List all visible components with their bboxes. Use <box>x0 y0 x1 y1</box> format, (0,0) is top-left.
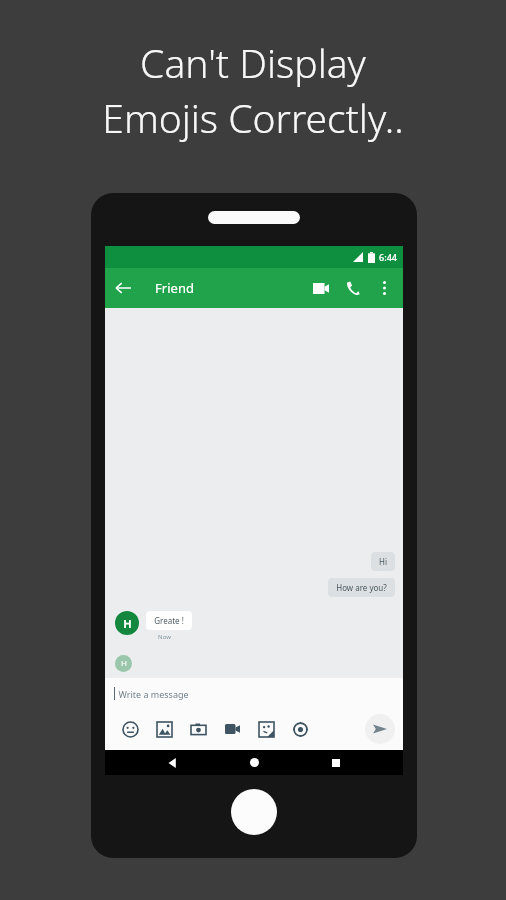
staticText: Now <box>158 633 171 641</box>
staticText: Friend <box>155 279 194 297</box>
button[interactable]: Video call <box>305 272 337 304</box>
staticText: 6:44 <box>379 251 397 263</box>
button[interactable]: Video <box>215 714 249 744</box>
button[interactable]: Home <box>239 750 269 775</box>
button[interactable]: Send <box>365 714 395 744</box>
staticText: Can't Display <box>140 36 366 89</box>
button[interactable]: Recents <box>321 750 351 775</box>
button[interactable]: Sticker <box>249 714 283 744</box>
staticText: Emojis Correctly.. <box>102 91 404 144</box>
staticText: H <box>121 658 127 669</box>
staticText: Greate ! <box>154 615 184 626</box>
button[interactable]: Gallery <box>147 714 181 744</box>
button[interactable]: Hi <box>371 552 395 571</box>
button[interactable]: Camera <box>181 714 215 744</box>
button[interactable]: How are you? <box>328 578 395 597</box>
button[interactable]: More options <box>369 273 399 303</box>
button[interactable]: Back <box>157 750 187 775</box>
button[interactable]: Emoji <box>113 714 147 744</box>
staticText: How are you? <box>336 582 387 593</box>
staticText: H <box>123 616 132 631</box>
staticText: Write a message <box>118 688 189 700</box>
button[interactable]: Contact avatar <box>115 655 132 672</box>
button[interactable]: Contact avatar <box>115 611 139 635</box>
button[interactable]: Greate ! <box>146 611 192 630</box>
button[interactable]: Call <box>337 272 369 304</box>
button[interactable]: Write a message <box>105 678 403 708</box>
button[interactable]: Friend <box>155 279 305 297</box>
button[interactable]: Back <box>105 270 141 306</box>
button[interactable]: Location <box>283 714 317 744</box>
staticText: Hi <box>379 556 387 567</box>
button[interactable]: Home button <box>231 789 277 835</box>
